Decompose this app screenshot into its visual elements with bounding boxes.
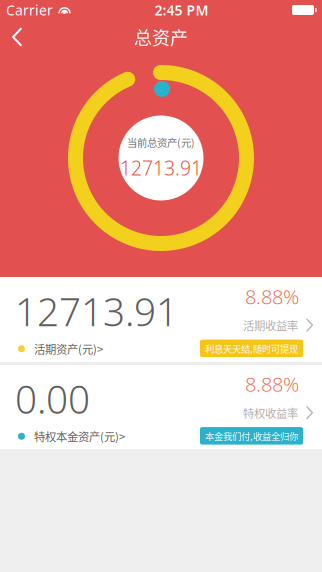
staticText: 特权本金资产(元)> bbox=[34, 428, 125, 444]
staticText: Carrier bbox=[6, 0, 53, 20]
staticText: 12713.91 bbox=[15, 285, 178, 338]
staticText: 0.00 bbox=[15, 372, 90, 425]
staticText: 2:45 PM bbox=[154, 0, 208, 20]
staticText: 本金我们付,收益全归你 bbox=[205, 429, 298, 443]
staticText: 总资产 bbox=[134, 24, 188, 50]
staticText: 8.88% bbox=[245, 370, 299, 398]
staticText: 特权收益率 bbox=[243, 405, 298, 421]
staticText: 12713.91 bbox=[120, 155, 202, 181]
staticText: 当前总资产(元) bbox=[127, 135, 195, 150]
staticText: 活期收益率 bbox=[243, 317, 298, 334]
staticText: 活期资产(元)> bbox=[34, 341, 103, 357]
staticText: 8.88% bbox=[245, 283, 299, 310]
button[interactable]: 0.00 bbox=[0, 365, 322, 449]
button[interactable]: 12713.91 bbox=[0, 277, 322, 362]
staticText: 利息天天结,随时可提现 bbox=[205, 342, 298, 355]
button[interactable]: Back bbox=[0, 21, 34, 53]
